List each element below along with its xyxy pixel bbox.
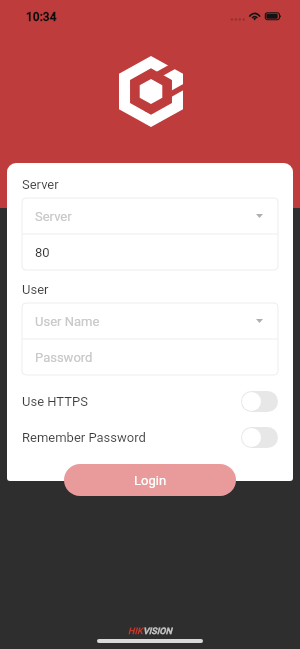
button[interactable]: Server <box>22 198 278 234</box>
staticText: Password <box>35 350 93 365</box>
button[interactable]: 80 <box>22 234 278 270</box>
staticText: User <box>22 282 49 297</box>
staticText: 80 <box>35 245 50 260</box>
button[interactable]: Use HTTPS <box>22 391 278 412</box>
staticText: 10:34 <box>26 10 57 24</box>
button[interactable]: User Name <box>22 303 278 339</box>
staticText: Remember Password <box>22 430 146 445</box>
staticText: VISION <box>143 626 172 637</box>
staticText: Server <box>35 209 72 224</box>
staticText: Server <box>22 177 59 192</box>
staticText: Use HTTPS <box>22 394 88 409</box>
staticText: User Name <box>35 314 100 329</box>
other: Signal, wifi and battery status <box>228 8 288 24</box>
staticText: Login <box>134 473 167 488</box>
staticText: HIK <box>128 626 143 637</box>
button[interactable]: Remember Password <box>22 427 278 448</box>
button[interactable]: Password <box>22 339 278 375</box>
button[interactable]: Login <box>64 464 236 496</box>
